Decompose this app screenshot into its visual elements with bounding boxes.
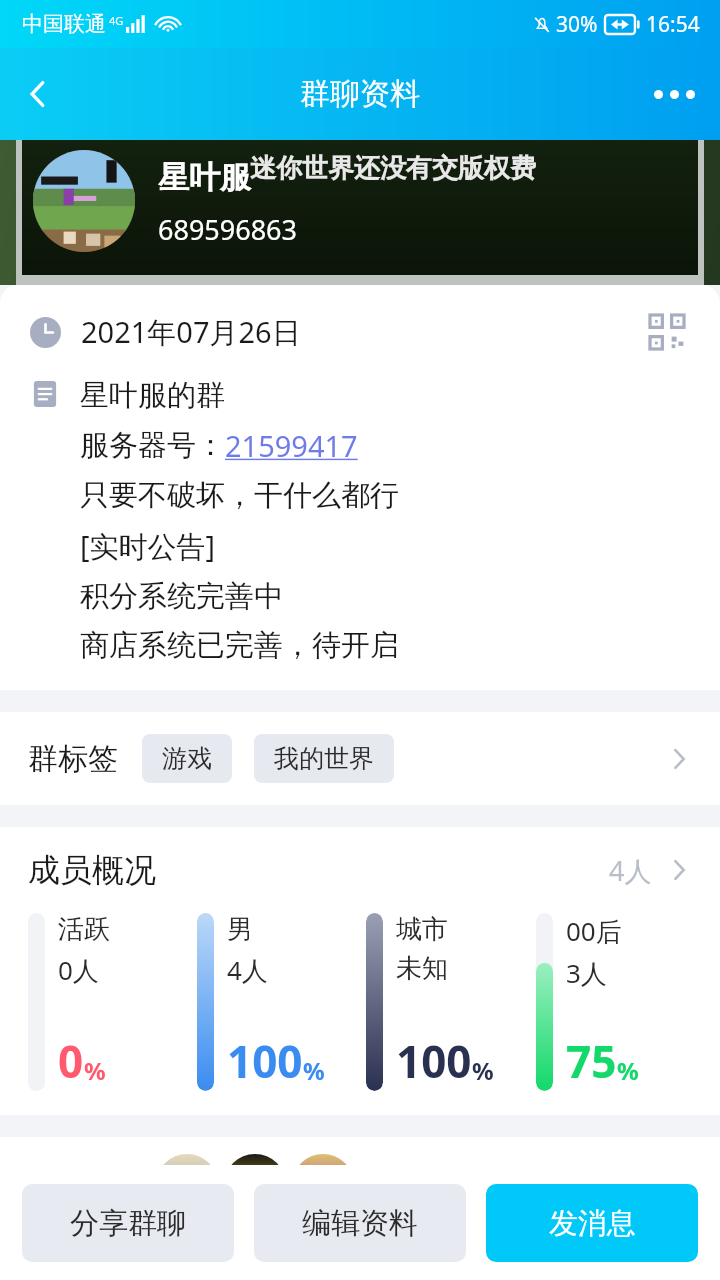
staticText: 689596863 (158, 211, 297, 248)
button[interactable]: 21599417 (225, 426, 358, 465)
staticText: 编辑资料 (302, 1205, 418, 1242)
staticText: 星叶服的群 (80, 377, 225, 414)
button[interactable]: 群标签 (0, 712, 720, 805)
staticText: 75 (566, 1031, 617, 1091)
staticText: 2021年07月26日 (81, 312, 301, 352)
staticText: 4人 (227, 952, 268, 988)
button[interactable]: Back (8, 64, 68, 124)
staticText: 中国联通 (22, 11, 106, 37)
staticText: 活跃 (58, 913, 110, 946)
staticText: 星叶服 (158, 158, 251, 197)
staticText: % (84, 1054, 106, 1087)
staticText: 群标签 (28, 740, 118, 778)
staticText: 商店系统已完善，待开启 (80, 627, 399, 664)
staticText: % (303, 1054, 325, 1087)
button[interactable]: More options (646, 66, 702, 122)
staticText: 4G (109, 13, 124, 28)
staticText: 管理员 (28, 1166, 118, 1204)
staticText: 100 (396, 1031, 472, 1091)
staticText: 只要不破坏，干什么都行 (80, 477, 399, 514)
button[interactable]: 管理员 (0, 1137, 720, 1233)
staticText: 3人 (566, 955, 607, 991)
staticText: [实时公告] (80, 526, 216, 566)
staticText: 0人 (58, 952, 99, 988)
staticText: 群聊资料 (300, 75, 420, 113)
staticText: 0 (58, 1031, 84, 1091)
button[interactable]: 发消息 (486, 1184, 698, 1262)
staticText: 4人 (609, 852, 652, 889)
staticText: 共4人 (584, 1167, 654, 1204)
staticText: 成员概况 (28, 850, 156, 890)
staticText: 发消息 (549, 1205, 636, 1242)
staticText: 服务器号： (80, 427, 225, 464)
staticText: 我的世界 (274, 743, 374, 774)
staticText: 00后 (566, 913, 622, 949)
button[interactable]: Group avatar (33, 150, 135, 252)
staticText: 30% (556, 10, 598, 39)
staticText: % (617, 1054, 639, 1087)
button[interactable]: 编辑资料 (254, 1184, 466, 1262)
staticText: 16:54 (646, 10, 700, 39)
staticText: 分享群聊 (70, 1205, 186, 1242)
button[interactable]: 成员概况 (0, 827, 720, 913)
button[interactable]: 分享群聊 (22, 1184, 234, 1262)
staticText: 男 (227, 913, 253, 946)
staticText: 迷你世界还没有交版权费 (250, 152, 536, 185)
staticText: 100 (227, 1031, 303, 1091)
staticText: 游戏 (162, 743, 212, 774)
button[interactable]: Group QR code (644, 309, 690, 355)
staticText: 积分系统完善中 (80, 578, 283, 615)
staticText: % (472, 1054, 494, 1087)
staticText: 城市 (396, 913, 448, 946)
staticText: 未知 (396, 952, 448, 985)
